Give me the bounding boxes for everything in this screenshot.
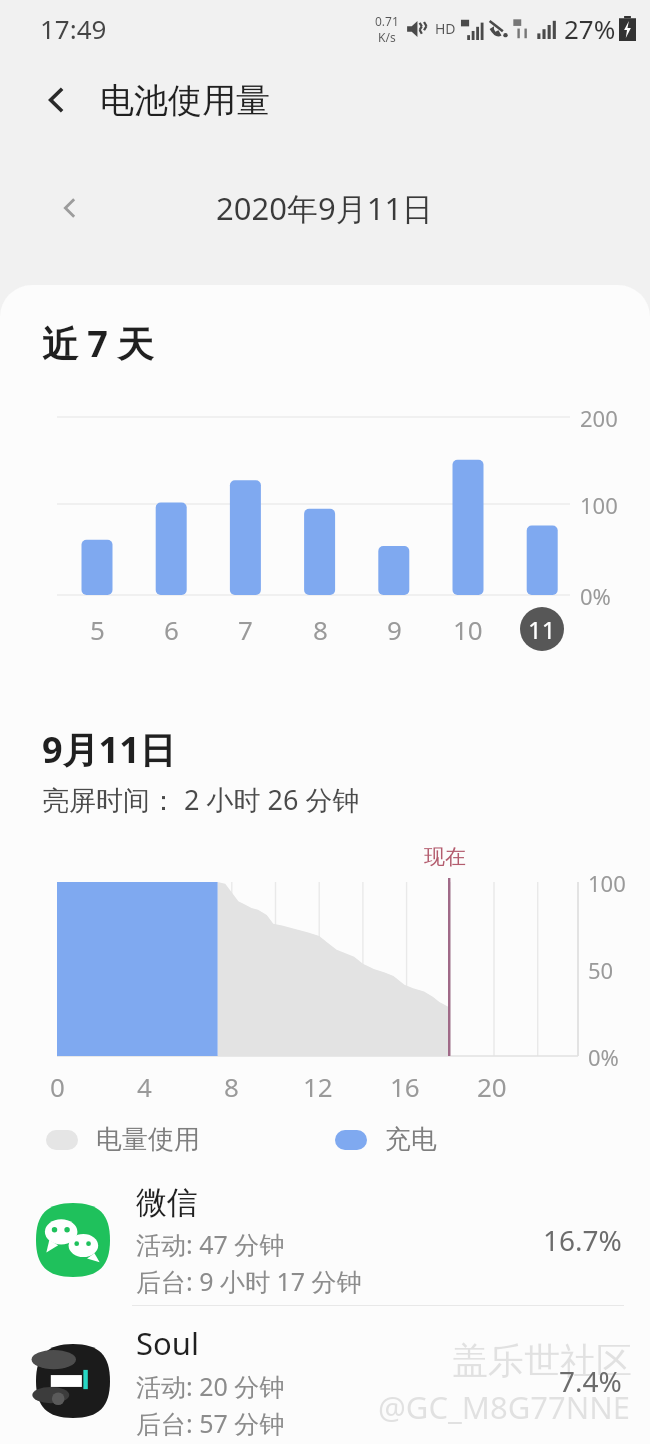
staticText: 9月11日 <box>42 725 176 774</box>
staticText: 0 <box>50 1069 65 1104</box>
staticText: 27% <box>564 11 616 46</box>
button[interactable]: 微信 <box>0 1175 650 1305</box>
staticText: 100 <box>580 490 618 520</box>
staticText: 10 <box>453 612 483 647</box>
button[interactable]: Soul <box>0 1317 650 1444</box>
staticText: 微信 <box>136 1183 198 1222</box>
staticText: 0.71 <box>375 13 399 29</box>
staticText: 17:49 <box>40 11 107 46</box>
staticText: K/s <box>378 29 396 45</box>
staticText: 200 <box>580 403 618 433</box>
staticText: 11 <box>528 613 556 646</box>
staticText: 近 7 天 <box>42 319 154 368</box>
staticText: 7 <box>238 612 253 647</box>
staticText: 5 <box>90 612 105 647</box>
staticText: 8 <box>313 612 328 647</box>
staticText: 盖乐世社区 <box>452 1338 632 1383</box>
staticText: 后台: 57 分钟 <box>136 1406 285 1440</box>
staticText: 活动: 20 分钟 <box>136 1369 285 1403</box>
button[interactable]: Back <box>28 71 86 129</box>
staticText: 6 <box>164 612 179 647</box>
staticText: HD <box>435 19 456 38</box>
staticText: 充电 <box>385 1123 437 1156</box>
staticText: 0% <box>580 581 611 611</box>
staticText: 16 <box>390 1069 420 1104</box>
staticText: 12 <box>303 1069 333 1104</box>
staticText: 50 <box>588 955 614 985</box>
staticText: Soul <box>136 1322 199 1364</box>
staticText: 7.4% <box>559 1362 622 1400</box>
staticText: 亮屏时间： 2 小时 26 分钟 <box>42 781 360 818</box>
staticText: 2020年9月11日 <box>216 187 434 229</box>
button[interactable]: Previous day <box>44 182 96 234</box>
staticText: 0% <box>588 1042 619 1072</box>
staticText: @GC_M8G77NNE <box>378 1386 631 1428</box>
staticText: 9 <box>387 612 402 647</box>
staticText: 现在 <box>424 844 466 870</box>
staticText: 活动: 47 分钟 <box>136 1227 285 1261</box>
staticText: 电池使用量 <box>100 79 270 122</box>
staticText: 后台: 9 小时 17 分钟 <box>136 1264 362 1298</box>
staticText: 8 <box>224 1069 239 1104</box>
staticText: 20 <box>477 1069 507 1104</box>
staticText: 4 <box>137 1069 152 1104</box>
staticText: 16.7% <box>543 1221 622 1259</box>
staticText: 电量使用 <box>96 1123 200 1156</box>
staticText: 100 <box>588 868 626 898</box>
button[interactable]: 11 <box>520 607 564 651</box>
